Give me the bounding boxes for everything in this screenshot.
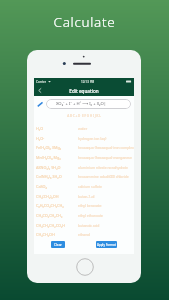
staticText: Carrier xyxy=(36,80,47,84)
staticText: aluminium nitrate nonahydrate xyxy=(78,165,136,170)
staticText: hexaaquo (hexaaqua) iron complex xyxy=(78,145,136,150)
staticText: Al(NO₃)₃ 9H₂O xyxy=(36,165,78,170)
button[interactable]: Clear xyxy=(51,241,65,248)
staticText: CH₃(CH₂)₃OH xyxy=(36,194,78,199)
staticText: ethyl benzoate xyxy=(78,203,136,208)
button[interactable]: CH₃CH₂OH xyxy=(34,229,134,239)
staticText: A B C + D E F G H I J K L xyxy=(34,114,134,118)
staticText: Mn(H₂O)₆ Mg₃ xyxy=(36,155,78,160)
staticText: H₃O⁺ xyxy=(36,136,78,141)
button[interactable]: Apply Format xyxy=(96,241,117,248)
staticText: 12:13 PM xyxy=(81,80,95,84)
staticText: Co(NH₃)₆ 3H₂O xyxy=(36,174,78,179)
staticText: hexaaquo (hexaaqua) manganese complex xyxy=(78,155,136,160)
staticText: hexaammine cobalt(III) chloride hydrate xyxy=(78,174,136,179)
staticText: butanoic acid xyxy=(78,223,136,228)
staticText: ethyl ethanoate xyxy=(78,213,136,218)
staticText: CaSO₄ xyxy=(36,184,78,189)
staticText: ethanol xyxy=(78,232,136,237)
staticText: Clear xyxy=(54,243,62,247)
staticText: C₆H₅CO₂CH₂CH₃ xyxy=(36,203,78,208)
button[interactable]: H₃O⁺ xyxy=(34,133,134,143)
button[interactable]: H₂O xyxy=(34,123,134,133)
staticText: CH₃CO₂CH₂CH₃ xyxy=(36,213,78,218)
button[interactable]: CH₃(CH₂)₃OH xyxy=(34,191,134,201)
button[interactable]: Co(NH₃)₆ 3H₂O xyxy=(34,171,134,181)
button[interactable]: C₆H₅CO₂CH₂CH₃ xyxy=(34,200,134,210)
staticText: Calculate xyxy=(0,13,169,31)
button[interactable]: Edit equation xyxy=(34,99,46,109)
staticText: Fe(H₂O)₆ 3Mg₂ xyxy=(36,145,78,150)
button[interactable]: Mn(H₂O)₆ Mg₃ xyxy=(34,152,134,162)
button[interactable]: Back xyxy=(34,85,46,96)
staticText: CH₃CH₂OH xyxy=(36,232,78,237)
staticText: butan-1-ol xyxy=(78,194,136,199)
staticText: Edit equation xyxy=(34,88,134,94)
staticText: XO₃⁻ + I⁻ + H⁺ ⟶ I₂ + X₂O| xyxy=(56,101,107,107)
staticText: hydrogen ion (aq) xyxy=(78,136,136,141)
button[interactable]: CaSO₄ xyxy=(34,181,134,191)
button[interactable]: XO₃⁻ + I⁻ + H⁺ ⟶ I₂ + X₂O| xyxy=(46,99,131,109)
staticText: water xyxy=(78,126,136,131)
staticText: calcium sulfate xyxy=(78,184,136,189)
staticText: H₂O xyxy=(36,126,78,131)
button[interactable]: CH₃CH₂CH₂CO₂H xyxy=(34,220,134,230)
button[interactable]: CH₃CO₂CH₂CH₃ xyxy=(34,210,134,220)
button[interactable]: Fe(H₂O)₆ 3Mg₂ xyxy=(34,142,134,152)
button[interactable]: Al(NO₃)₃ 9H₂O xyxy=(34,162,134,172)
staticText: CH₃CH₂CH₂CO₂H xyxy=(36,223,78,228)
staticText: Apply Format xyxy=(97,243,116,247)
